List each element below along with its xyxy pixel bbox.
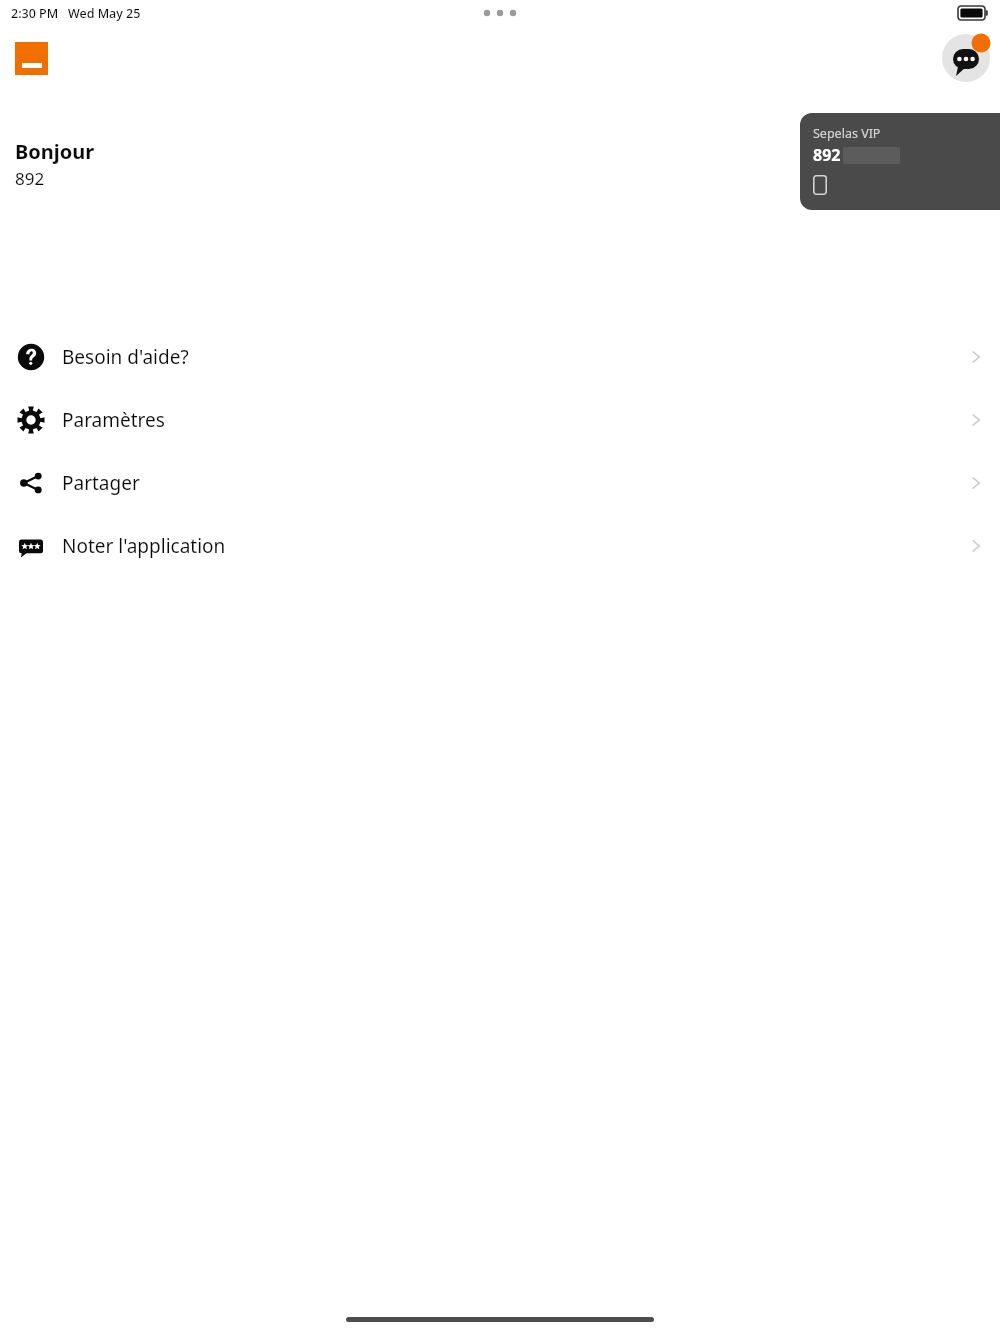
button[interactable]: Besoin d'aide? <box>0 325 1000 388</box>
button[interactable]: Paramètres <box>0 388 1000 451</box>
button[interactable]: Noter l'application <box>0 514 1000 577</box>
staticText: Sepelas VIP <box>813 125 881 142</box>
staticText: 892 <box>15 167 45 190</box>
button[interactable]: Orange <box>15 42 48 75</box>
staticText: 892 <box>813 144 841 166</box>
staticText: Bonjour <box>15 138 95 165</box>
staticText: 2:30 PM Wed May 25 <box>11 5 141 22</box>
staticText: Besoin d'aide? <box>62 344 189 370</box>
button[interactable]: Partager <box>0 451 1000 514</box>
staticText: Paramètres <box>62 407 165 433</box>
staticText: Partager <box>62 470 140 496</box>
staticText: Noter l'application <box>62 533 226 559</box>
button[interactable]: Sepelas VIP <box>800 113 1000 210</box>
button[interactable]: Messages <box>942 34 990 82</box>
